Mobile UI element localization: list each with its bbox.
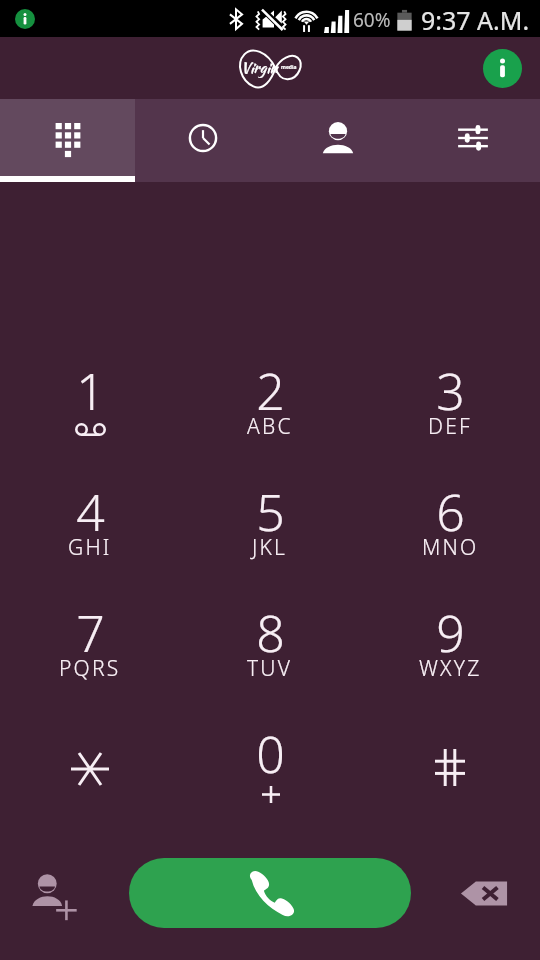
staticText: TUV [247,654,293,683]
button[interactable]: Recent calls [135,99,270,182]
button[interactable]: 3 DEF [360,357,540,478]
staticText: media [281,64,297,71]
button[interactable]: Star [0,720,180,841]
button[interactable]: 7 PQRS [0,599,180,720]
staticText: 4 [76,478,105,546]
button[interactable]: 2 ABC [180,357,360,478]
button[interactable]: 0 + [180,720,360,841]
staticText: 2 [256,357,285,425]
button[interactable]: 5 JKL [180,478,360,599]
button[interactable]: Contacts [270,99,405,182]
staticText: WXYZ [419,654,482,683]
button[interactable]: Call [129,858,411,928]
button[interactable]: 4 GHI [0,478,180,599]
staticText: Virgin [241,57,278,79]
staticText: MNO [422,533,479,562]
staticText: 5 [256,478,285,546]
staticText: GHI [68,533,112,562]
staticText: 60% [353,7,391,33]
button[interactable]: Settings [405,99,540,182]
button[interactable]: 1 Voicemail [0,357,180,478]
staticText: 1 [76,357,105,425]
button[interactable]: 6 MNO [360,478,540,599]
button[interactable]: Pound [360,720,540,841]
button[interactable]: 8 TUV [180,599,360,720]
button[interactable]: Info [480,46,524,90]
staticText: 7 [76,599,105,667]
staticText: PQRS [59,654,121,683]
button[interactable]: Backspace [448,859,520,927]
button[interactable]: Add contact [10,859,78,927]
staticText: JKL [252,533,288,562]
staticText: 9 [436,599,465,667]
staticText: 6 [436,478,465,546]
staticText: 3 [436,357,465,425]
button[interactable]: Dialpad [0,99,135,182]
staticText: DEF [428,412,472,441]
button[interactable]: 9 WXYZ [360,599,540,720]
staticText: 0 [256,720,285,788]
staticText: ABC [247,412,293,441]
staticText: 9:37 A.M. [421,3,530,37]
staticText: 8 [256,599,285,667]
